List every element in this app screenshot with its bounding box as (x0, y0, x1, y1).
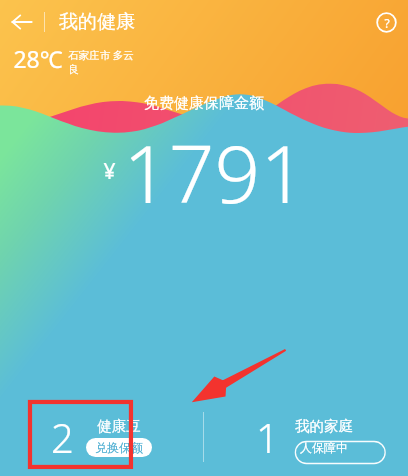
staticText: 兑换保额 (95, 440, 143, 455)
staticText: 石家庄市 多云 (68, 48, 134, 62)
staticText: 良 (68, 63, 79, 76)
button[interactable]: Help (364, 0, 408, 44)
staticText: 2 (51, 410, 74, 464)
staticText: 我的健康 (59, 10, 135, 34)
button[interactable]: 2 (0, 398, 203, 476)
staticText: 1 (256, 410, 279, 464)
staticText: 28℃ (13, 43, 63, 74)
staticText: ? (384, 15, 390, 31)
button[interactable]: 1 (204, 398, 408, 476)
staticText: 1791 (123, 117, 306, 226)
button[interactable]: Back (0, 0, 44, 44)
staticText: 健康豆 (97, 417, 141, 435)
staticText: 我的家庭 (295, 417, 353, 435)
staticText: ¥ (103, 157, 116, 186)
staticText: 人保障中 (300, 440, 348, 455)
staticText: 免费健康保障金额 (144, 94, 264, 113)
